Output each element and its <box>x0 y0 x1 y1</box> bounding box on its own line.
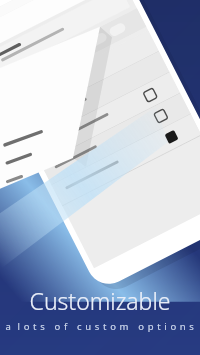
button[interactable]: App screenshot preview <box>0 0 200 355</box>
staticText: a l o t s o f c u s t o m o p t i o n s <box>0 320 200 333</box>
staticText: Customizable <box>0 285 200 316</box>
